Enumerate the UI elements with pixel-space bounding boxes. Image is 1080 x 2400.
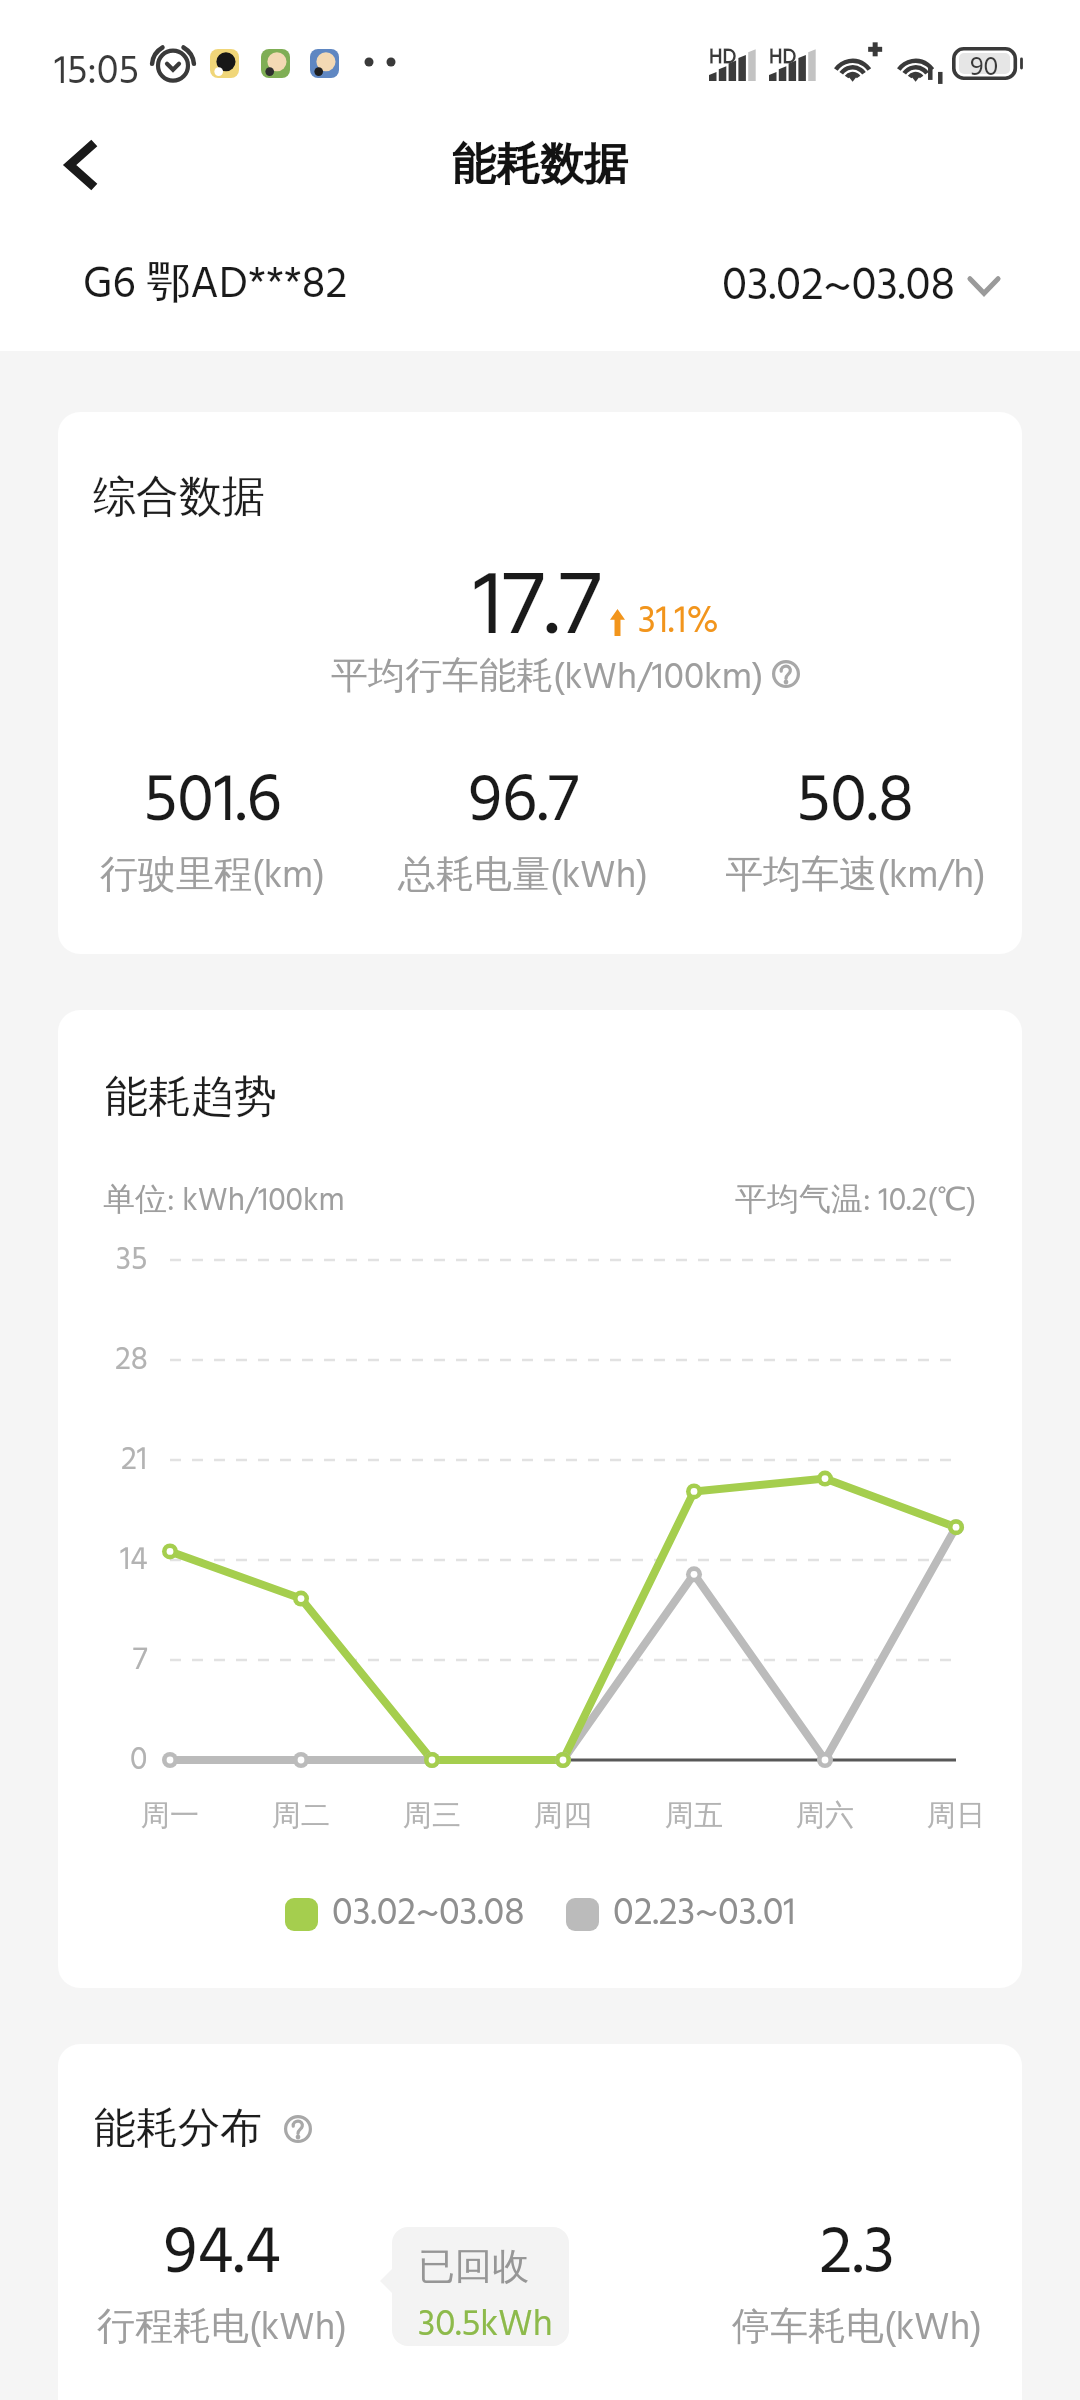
staticText: 已回收 [418,2243,529,2290]
staticText: 03.02~03.08 [722,250,956,322]
staticText: 综合数据 [93,470,265,524]
staticText: 7 [133,1635,148,1685]
staticText: HD [709,41,737,75]
staticText: 停车耗电(kWh) [732,2299,982,2360]
staticText: 96.7 [468,749,579,856]
staticText: 总耗电量(kWh) [398,847,648,908]
staticText: 21 [121,1435,148,1485]
staticText: 2.3 [819,2201,895,2308]
staticText: 行驶里程(km) [100,847,325,908]
staticText: 17.7 [473,536,601,683]
staticText: G6 鄂AD***82 [83,251,348,321]
staticText: 02.23~03.01 [613,1884,796,1944]
staticText: 行程耗电(kWh) [97,2299,347,2360]
staticText: 31.1% [638,592,719,653]
staticText: 0 [130,1735,148,1785]
staticText: 平均行车能耗(kWh/100km) [331,649,764,708]
staticText: 能耗分布 [94,2102,262,2155]
staticText: 平均车速(km/h) [725,847,986,908]
staticText: 90 [970,47,999,80]
staticText: 35 [116,1235,148,1285]
staticText: 周五 [665,1797,723,1834]
button[interactable]: Back [41,124,123,206]
staticText: 周六 [796,1797,854,1834]
staticText: 能耗趋势 [105,1070,277,1124]
staticText: 周日 [927,1797,985,1834]
staticText: 14 [120,1535,148,1585]
staticText: 50.8 [796,749,914,856]
staticText: 501.6 [143,749,282,856]
staticText: HD [769,41,797,75]
staticText: 28 [115,1335,148,1385]
staticText: 30.5kWh [418,2296,553,2346]
staticText: 94.4 [163,2201,281,2308]
staticText: 周二 [272,1797,330,1834]
staticText: 周一 [141,1797,199,1834]
button[interactable]: 03.02~03.08 [722,250,1000,322]
staticText: 周四 [534,1797,592,1834]
staticText: 03.02~03.08 [332,1884,525,1944]
staticText: 单位: kWh/100km [103,1176,345,1222]
staticText: 平均气温: 10.2(℃) [735,1176,977,1222]
staticText: 能耗数据 [452,137,628,192]
staticText: 周三 [403,1797,461,1834]
staticText: 15:05 [54,41,139,105]
